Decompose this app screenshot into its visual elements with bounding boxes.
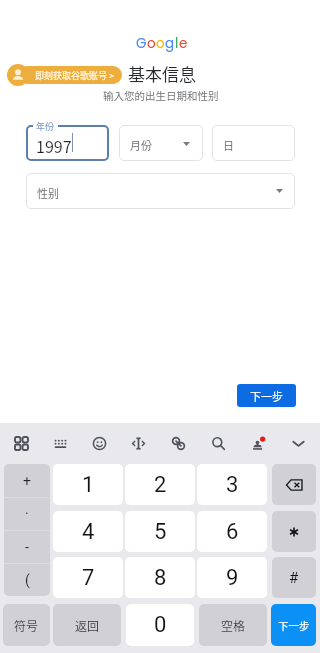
button[interactable]: 8 (125, 557, 195, 598)
button[interactable]: Move cursor (119, 423, 158, 464)
button[interactable]: 5 (125, 511, 195, 552)
staticText: 空格 (221, 617, 246, 634)
staticText: 8 (154, 565, 167, 591)
staticText: o (147, 34, 156, 53)
staticText: G (136, 34, 147, 53)
staticText: 6 (226, 519, 239, 545)
staticText: 月份 (130, 137, 152, 153)
staticText: 即刻获取谷歌账号 > (35, 69, 115, 82)
staticText: 基本信息 (128, 61, 196, 86)
button[interactable]: # (272, 557, 316, 598)
staticText: g (165, 34, 175, 53)
staticText: ( (25, 572, 30, 588)
staticText: 下一步 (250, 388, 283, 404)
button[interactable]: Voice account (238, 423, 278, 464)
staticText: - (25, 539, 29, 555)
button[interactable]: 4 (53, 511, 123, 552)
button[interactable]: Backspace (272, 464, 316, 505)
button[interactable]: 1 (53, 464, 123, 505)
staticText: 性别 (37, 185, 59, 201)
button[interactable]: · (4, 497, 50, 530)
staticText: 2 (154, 472, 167, 498)
button[interactable]: + (4, 464, 50, 497)
button[interactable]: 0 (126, 604, 194, 646)
button[interactable]: 空格 (199, 604, 267, 646)
button[interactable]: 下一步 (237, 384, 296, 407)
staticText: o (156, 34, 165, 53)
staticText: 返回 (75, 617, 100, 634)
button[interactable]: Emoji (80, 423, 119, 464)
button[interactable]: 2 (125, 464, 195, 505)
button[interactable] (26, 125, 109, 161)
button[interactable]: 月份 (119, 125, 203, 161)
staticText: 9 (226, 565, 239, 591)
button[interactable]: 6 (197, 511, 267, 552)
button[interactable]: Keyboard (41, 423, 80, 464)
button[interactable]: 3 (197, 464, 267, 505)
staticText: # (289, 569, 299, 587)
staticText: 符号 (14, 617, 39, 634)
button[interactable]: 日 (212, 125, 295, 161)
staticText: 0 (154, 612, 167, 638)
button[interactable]: ( (4, 563, 50, 596)
button[interactable]: 9 (197, 557, 267, 598)
staticText: 4 (82, 519, 95, 545)
staticText: l (175, 34, 179, 53)
staticText: + (23, 473, 31, 489)
staticText: · (25, 506, 29, 522)
staticText: 输入您的出生日期和性别 (103, 88, 219, 103)
button[interactable]: 7 (53, 557, 123, 598)
staticText: 3 (226, 472, 239, 498)
staticText: 7 (82, 565, 95, 591)
staticText: 下一步 (278, 618, 310, 633)
button[interactable]: - (4, 530, 50, 563)
button[interactable]: 性别 (26, 173, 295, 209)
button[interactable]: Apps (2, 423, 41, 464)
button[interactable]: 即刻获取谷歌账号 > (18, 66, 122, 84)
staticText: e (179, 34, 188, 53)
staticText: 日 (223, 137, 234, 153)
staticText: 1997 (36, 134, 72, 157)
staticText: 年份 (36, 120, 55, 133)
button[interactable]: 下一步 (271, 604, 316, 646)
button[interactable]: 符号 (3, 604, 50, 646)
staticText: 1 (82, 472, 95, 498)
button[interactable]: Hide keyboard (278, 423, 318, 464)
button[interactable]: 返回 (53, 604, 121, 646)
button[interactable]: Link (158, 423, 198, 464)
staticText: 5 (154, 519, 167, 545)
button[interactable]: Search (198, 423, 238, 464)
button[interactable]: Asterisk (272, 511, 316, 552)
